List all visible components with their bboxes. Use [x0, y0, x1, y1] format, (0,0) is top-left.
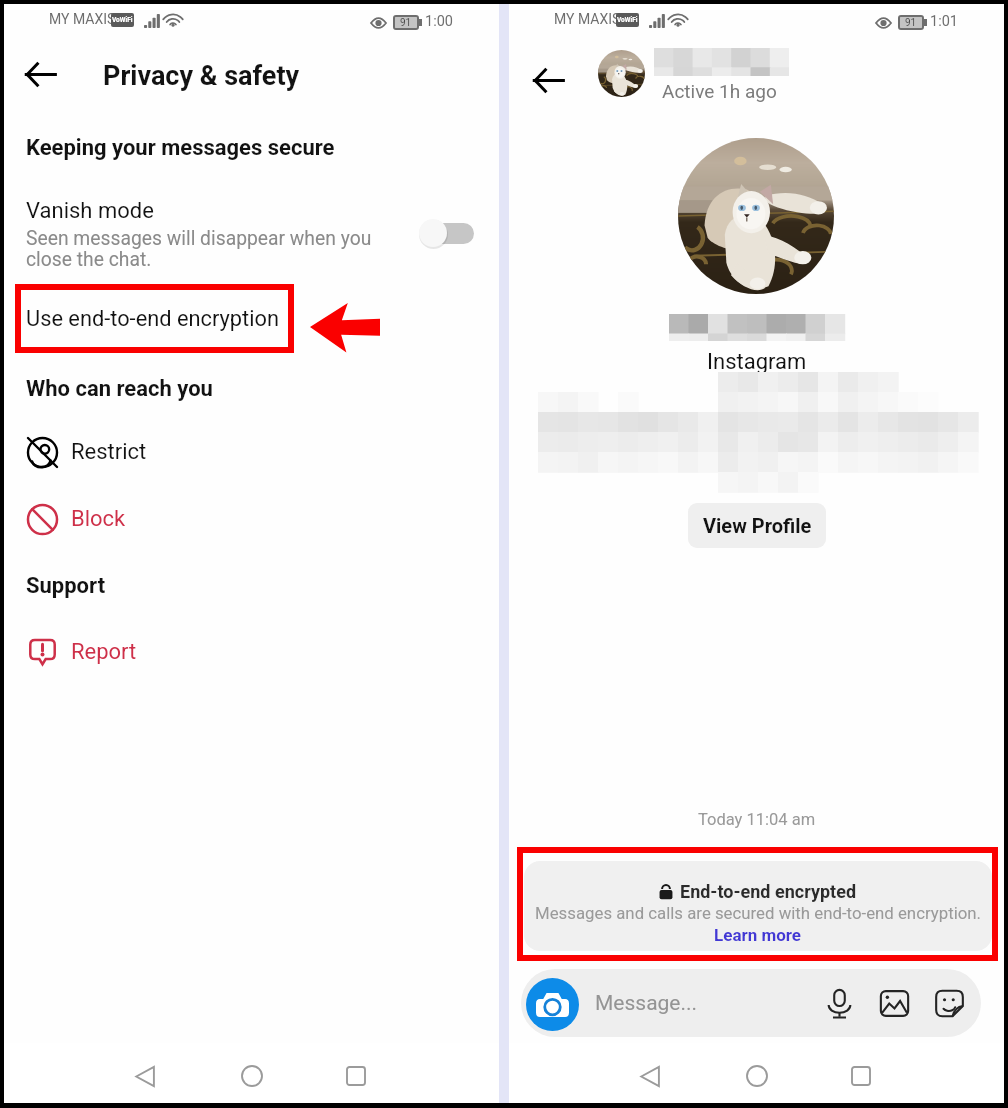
button[interactable]: Recents [340, 1060, 372, 1092]
staticText: Report [71, 639, 137, 665]
staticText: MY MAXIS [554, 11, 621, 27]
button[interactable]: Back [526, 58, 570, 102]
button[interactable]: Back [129, 1060, 161, 1092]
button[interactable] [415, 218, 479, 252]
staticText: End-to-end encrypted [680, 881, 857, 902]
button[interactable]: Block [4, 499, 499, 539]
staticText: VoWiFi [112, 16, 133, 24]
button[interactable]: Use end-to-end encryption [15, 284, 294, 353]
staticText: 1:00 [425, 13, 453, 30]
button[interactable]: Recents [845, 1060, 877, 1092]
staticText: Instagram [707, 349, 807, 375]
staticText: Restrict [71, 439, 147, 465]
button[interactable]: Home [741, 1060, 773, 1092]
button[interactable]: Home [236, 1060, 268, 1092]
staticText: Seen messages will disappear when you cl… [26, 227, 372, 271]
staticText: Message... [595, 991, 698, 1016]
button[interactable]: Restrict [4, 432, 499, 472]
staticText: 1:01 [930, 13, 958, 30]
staticText: Support [26, 573, 106, 599]
staticText: 91 [905, 17, 917, 28]
button[interactable]: Voice message [824, 988, 855, 1019]
staticText: Who can reach you [26, 376, 213, 402]
button[interactable]: Stickers [934, 988, 965, 1019]
staticText: VoWiFi [617, 16, 638, 24]
staticText: 91 [400, 17, 412, 28]
button[interactable]: Vanish mode [4, 194, 499, 276]
staticText: Block [71, 506, 126, 532]
staticText: Keeping your messages secure [26, 135, 335, 161]
staticText: MY MAXIS [49, 11, 116, 27]
staticText: Messages and calls are secured with end-… [535, 903, 982, 923]
staticText: Privacy & safety [103, 60, 300, 92]
staticText: Active 1h ago [662, 80, 777, 102]
button[interactable]: Camera [526, 978, 579, 1031]
button[interactable]: Back [18, 52, 62, 96]
staticText: Today 11:04 am [698, 810, 816, 829]
staticText: Vanish mode [26, 198, 154, 224]
staticText: View Profile [703, 514, 812, 537]
button[interactable]: End-to-end encrypted [524, 861, 992, 951]
button[interactable]: Learn more [714, 925, 802, 945]
button[interactable]: Back [634, 1060, 666, 1092]
button[interactable]: View Profile [688, 503, 826, 548]
button[interactable]: Gallery [879, 988, 910, 1019]
button[interactable]: Report [4, 632, 499, 672]
staticText: Use end-to-end encryption [26, 306, 279, 332]
